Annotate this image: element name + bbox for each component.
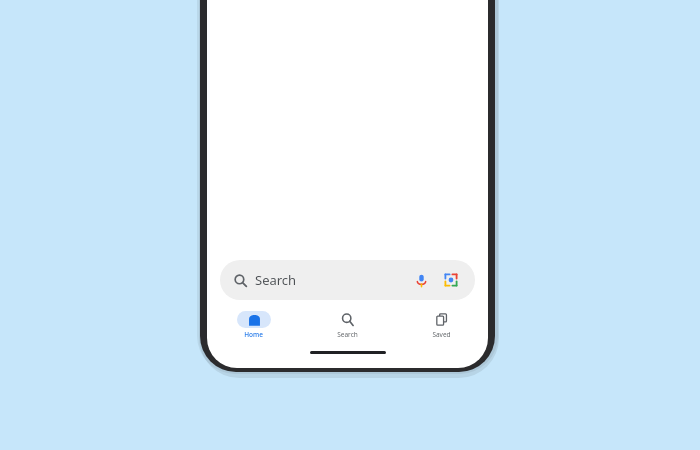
button[interactable]: Voice search — [410, 269, 432, 291]
button[interactable]: Search — [220, 260, 475, 300]
staticText: Home — [244, 330, 263, 339]
button[interactable]: Home — [207, 309, 300, 339]
button[interactable]: Saved — [394, 309, 488, 339]
staticText: Search — [255, 271, 297, 289]
button[interactable]: Search — [300, 309, 394, 339]
staticText: Saved — [432, 330, 451, 339]
staticText: Search — [337, 330, 358, 339]
button[interactable]: Google Lens — [440, 269, 462, 291]
